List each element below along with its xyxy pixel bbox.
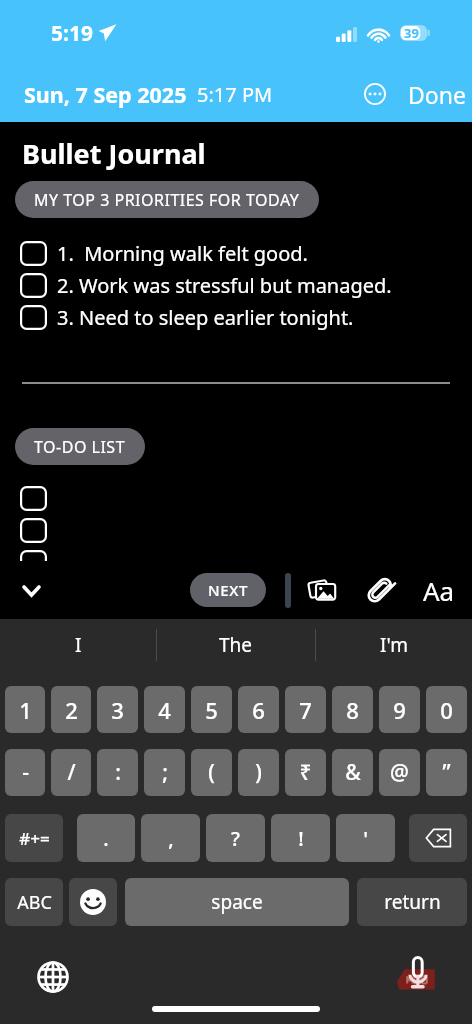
button[interactable]: I'm [316, 619, 472, 671]
staticText: 8 [346, 695, 359, 725]
staticText: . [103, 825, 109, 852]
staticText: 1 [19, 695, 32, 725]
button[interactable]: ) [238, 749, 279, 796]
button[interactable]: ( [191, 749, 232, 796]
staticText: ! [298, 825, 304, 852]
button[interactable]: ” [426, 749, 467, 796]
button[interactable]: Attach file [367, 569, 393, 611]
button[interactable]: 7 [285, 686, 326, 733]
button[interactable]: - [5, 749, 45, 796]
staticText: 5:17 PM [197, 81, 273, 108]
button[interactable]: MY TOP 3 PRIORITIES FOR TODAY [15, 181, 319, 218]
staticText: , [168, 825, 174, 852]
button[interactable]: Backspace [409, 814, 467, 862]
button[interactable]: 0 [426, 686, 467, 733]
staticText: 7 [299, 695, 312, 725]
button[interactable]: More options [356, 75, 394, 113]
button[interactable]: return [357, 878, 467, 926]
button[interactable]: Photos [304, 569, 340, 611]
button[interactable] [0, 482, 472, 514]
staticText: The [219, 632, 253, 658]
button[interactable]: ; [144, 749, 185, 796]
button[interactable]: ABC [5, 878, 63, 926]
staticText: 2 [65, 695, 78, 725]
staticText: space [211, 889, 263, 915]
button[interactable]: 6 [238, 686, 279, 733]
button[interactable]: I [0, 619, 156, 671]
staticText: ' [363, 825, 368, 852]
staticText: 3 [111, 695, 124, 725]
button[interactable]: 2. Work was stressful but managed. [0, 269, 472, 301]
button[interactable]: Done [404, 72, 470, 117]
button[interactable]: 4 [144, 686, 185, 733]
staticText: / [67, 758, 76, 787]
button[interactable]: NEXT [190, 573, 266, 607]
button[interactable]: 5 [191, 686, 232, 733]
button[interactable]: @ [379, 749, 420, 796]
staticText: Sun, 7 Sep 2025 [24, 80, 187, 109]
button[interactable]: Collapse [0, 566, 60, 614]
staticText: #+= [19, 827, 50, 850]
button[interactable]: #+= [5, 814, 63, 862]
staticText: return [384, 889, 441, 915]
button[interactable]: 8 [332, 686, 373, 733]
staticText: 5 [205, 695, 218, 725]
button[interactable]: : [97, 749, 138, 796]
staticText: 6 [252, 695, 265, 725]
staticText: ABC [17, 890, 52, 915]
staticText: ” [442, 758, 451, 787]
staticText: ₹ [299, 758, 312, 787]
button[interactable]: 9 [379, 686, 420, 733]
staticText: TO-DO LIST [34, 436, 126, 458]
staticText: NEXT [208, 580, 248, 600]
staticText: Done [408, 79, 466, 110]
button[interactable]: 3. Need to sleep earlier tonight. [0, 301, 472, 333]
button[interactable]: ? [206, 814, 265, 862]
button[interactable]: space [125, 878, 349, 926]
staticText: 2. Work was stressful but managed. [57, 272, 392, 299]
button[interactable]: & [332, 749, 373, 796]
button[interactable]: ! [271, 814, 330, 862]
button[interactable]: Aa [419, 568, 459, 612]
button[interactable]: The [157, 619, 315, 671]
button[interactable]: , [141, 814, 200, 862]
staticText: MY TOP 3 PRIORITIES FOR TODAY [34, 189, 300, 211]
button[interactable] [0, 514, 472, 546]
button[interactable]: 1 [5, 686, 45, 733]
staticText: 9 [393, 695, 406, 725]
staticText: I [75, 632, 82, 658]
staticText: - [22, 758, 29, 787]
button[interactable]: 1. Morning walk felt good. [0, 237, 472, 269]
button[interactable]: ₹ [285, 749, 326, 796]
staticText: 4 [158, 695, 171, 725]
staticText: ( [208, 758, 215, 787]
button[interactable]: Change keyboard [36, 960, 70, 994]
button[interactable]: . [77, 814, 135, 862]
staticText: Bullet Journal [22, 135, 206, 172]
staticText: 1. Morning walk felt good. [57, 240, 308, 267]
staticText: 3. Need to sleep earlier tonight. [57, 304, 354, 331]
staticText: Aa [423, 573, 455, 608]
staticText: 5:19 [51, 19, 93, 48]
staticText: I'm [380, 632, 408, 658]
staticText: ; [162, 758, 168, 787]
staticText: 0 [440, 695, 453, 725]
staticText: & [345, 758, 361, 787]
staticText: 39 [404, 24, 419, 42]
button[interactable]: 3 [97, 686, 138, 733]
button[interactable]: 2 [51, 686, 91, 733]
staticText: ) [255, 758, 262, 787]
staticText: : [115, 758, 121, 787]
button[interactable] [0, 546, 472, 578]
button[interactable]: ' [336, 814, 395, 862]
staticText: ? [231, 825, 240, 852]
button[interactable]: / [51, 749, 91, 796]
button[interactable]: Emoji [69, 878, 117, 926]
button[interactable]: Dictate [396, 950, 440, 994]
button[interactable]: TO-DO LIST [15, 428, 145, 465]
staticText: @ [390, 758, 409, 787]
